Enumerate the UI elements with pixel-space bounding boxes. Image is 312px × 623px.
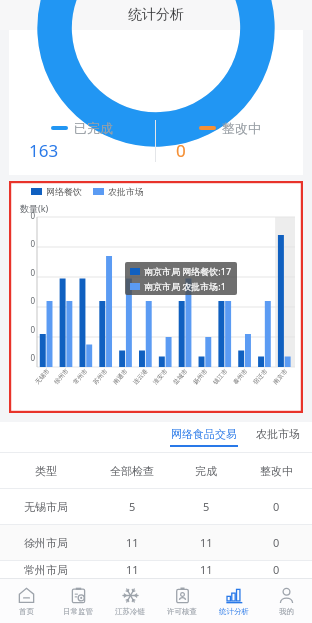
staticText: 数量(k)	[20, 202, 49, 214]
staticText: 整改中	[222, 120, 261, 136]
button[interactable]: 日常监管	[52, 579, 104, 623]
staticText: 我的	[279, 607, 294, 616]
button[interactable]: 我的	[260, 579, 312, 623]
staticText: 无锡市局	[24, 500, 68, 514]
staticText: 南通市局	[111, 366, 131, 386]
other: 统计分析	[226, 587, 243, 604]
staticText: 0	[30, 352, 35, 363]
staticText: 0	[30, 210, 35, 221]
button[interactable]: 整改中	[156, 120, 303, 162]
staticText: 0	[30, 267, 35, 278]
staticText: 11	[200, 562, 213, 577]
other: 首页	[18, 587, 35, 604]
staticText: 苏州市局	[91, 366, 111, 386]
staticText: 许可核查	[167, 607, 197, 616]
button[interactable]: 无锡市局	[0, 489, 312, 524]
staticText: 0	[273, 499, 280, 514]
staticText: 徐州市局	[52, 366, 71, 386]
button[interactable]: 徐州市局	[0, 525, 312, 560]
staticText: 连云港市局	[131, 366, 151, 386]
staticText: 农批市场	[108, 186, 144, 197]
staticText: 统计分析	[128, 6, 184, 24]
staticText: 11	[200, 535, 213, 550]
staticText: 常州市局	[24, 563, 68, 577]
staticText: 首页	[19, 607, 34, 616]
staticText: 0	[30, 295, 35, 306]
staticText: 类型	[35, 464, 57, 478]
staticText: 盐城市局	[171, 366, 191, 386]
staticText: 0	[273, 562, 280, 577]
staticText: 镇江市局	[211, 366, 231, 386]
staticText: 无锡市局	[33, 366, 52, 386]
staticText: 统计分析	[219, 607, 249, 616]
button[interactable]: 已完成	[9, 120, 155, 162]
staticText: 5	[129, 499, 136, 514]
staticText: 农批市场	[256, 427, 300, 441]
button[interactable]: 许可核查	[156, 579, 208, 623]
other: 许可核查	[174, 587, 191, 604]
staticText: 常州市局	[71, 366, 91, 386]
staticText: 11	[126, 562, 139, 577]
button[interactable]: 江苏冷链	[104, 579, 156, 623]
staticText: 完成	[195, 464, 217, 478]
staticText: 全部检查	[110, 464, 154, 478]
staticText: 0	[273, 535, 280, 550]
staticText: 南京市局	[271, 366, 291, 386]
staticText: 日常监管	[63, 607, 93, 616]
button[interactable]: 农批市场	[252, 427, 304, 447]
staticText: 扬州市局	[191, 366, 211, 386]
staticText: 淮安市局	[151, 366, 171, 386]
staticText: 0	[30, 238, 35, 249]
staticText: 泰州市局	[231, 366, 251, 386]
staticText: 163	[29, 139, 59, 162]
staticText: 徐州市局	[24, 536, 68, 550]
button[interactable]: 常州市局	[0, 561, 312, 578]
staticText: 0	[176, 139, 186, 162]
staticText: 江苏冷链	[115, 607, 145, 616]
button[interactable]: 网络食品交易	[166, 427, 242, 447]
staticText: 5	[203, 499, 210, 514]
staticText: 南京市局 网络餐饮:17	[144, 265, 232, 277]
button[interactable]: 农批市场	[93, 186, 144, 197]
staticText: 整改中	[260, 464, 293, 478]
button[interactable]: 统计分析	[208, 579, 260, 623]
other: 日常监管	[70, 587, 87, 604]
staticText: 南京市局 农批市场:1	[144, 280, 226, 292]
staticText: 已完成	[74, 120, 113, 136]
button[interactable]: 类型	[0, 453, 312, 488]
staticText: 0	[30, 324, 35, 335]
other: 江苏冷链	[122, 587, 139, 604]
staticText: 11	[126, 535, 139, 550]
staticText: 网络食品交易	[171, 427, 237, 441]
staticText: 网络餐饮	[46, 186, 82, 197]
other: 我的	[278, 587, 295, 604]
button[interactable]: 首页	[0, 579, 52, 623]
staticText: 宿迁市局	[251, 366, 271, 386]
button[interactable]: 网络餐饮	[31, 186, 82, 197]
